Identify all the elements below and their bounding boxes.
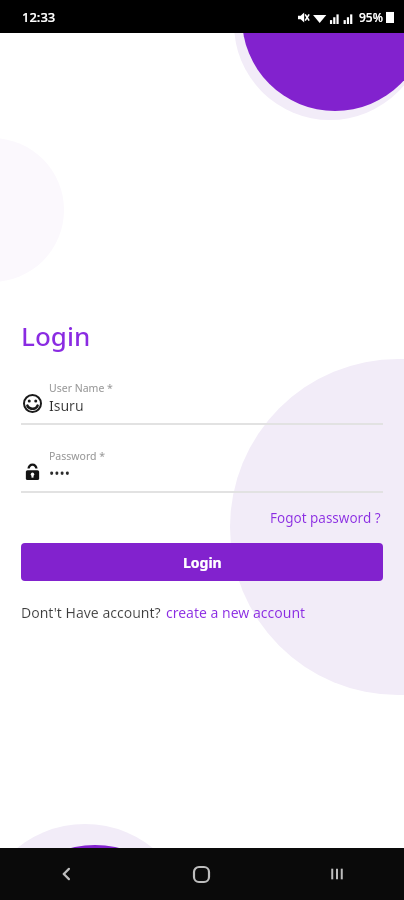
staticText: Login xyxy=(183,553,222,572)
button[interactable]: User name xyxy=(21,381,383,425)
staticText: 12:33 xyxy=(22,8,56,26)
button[interactable]: Login xyxy=(21,543,383,581)
staticText: Dont't Have account? xyxy=(21,603,161,622)
staticText: 95% xyxy=(359,9,383,25)
button[interactable]: create a new account xyxy=(166,603,306,622)
staticText: Isuru xyxy=(49,396,84,415)
button[interactable]: Password xyxy=(21,449,383,493)
button[interactable]: Fogot password ? xyxy=(268,505,383,531)
staticText: User Name * xyxy=(49,381,113,395)
staticText: Password * xyxy=(49,449,106,463)
staticText: Login xyxy=(21,318,91,353)
button[interactable]: Back xyxy=(0,848,134,900)
other: Password xyxy=(21,461,43,482)
button[interactable]: Home xyxy=(134,848,269,900)
button[interactable]: Recent apps xyxy=(269,848,404,900)
staticText: •••• xyxy=(49,464,71,483)
other: User name xyxy=(21,393,43,414)
